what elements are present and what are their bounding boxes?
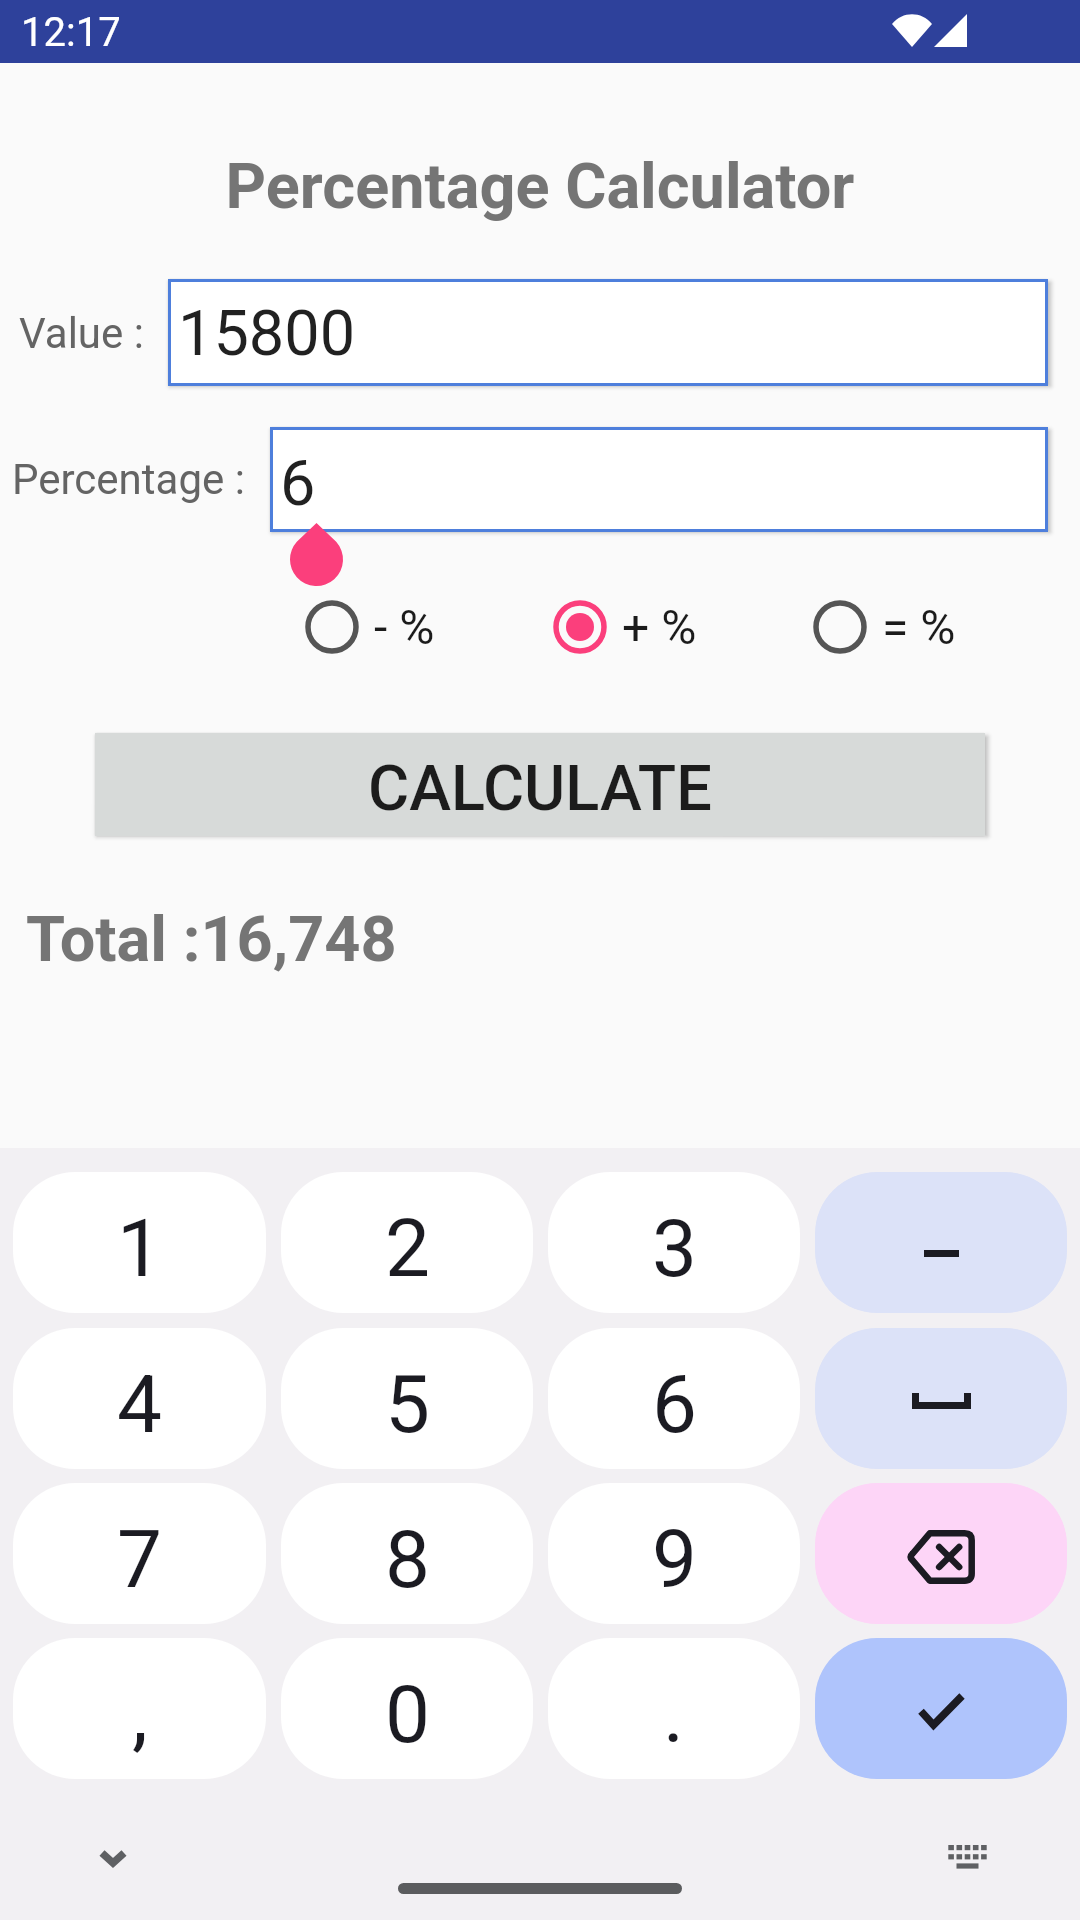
button[interactable]: 3 — [548, 1172, 800, 1313]
staticText: 4 — [117, 1358, 162, 1452]
staticText: 3 — [652, 1202, 697, 1296]
button[interactable]: 0 — [281, 1638, 533, 1779]
button[interactable]: Space — [815, 1328, 1067, 1469]
staticText: . — [663, 1668, 685, 1762]
staticText: 7 — [117, 1513, 162, 1607]
staticText: Percentage : — [12, 455, 245, 504]
button[interactable]: 5 — [281, 1328, 533, 1469]
staticText: Percentage Calculator — [0, 150, 1080, 224]
staticText: = % — [882, 599, 956, 655]
button[interactable]: Backspace — [815, 1483, 1067, 1624]
staticText: 1 — [117, 1202, 162, 1296]
staticText: + % — [622, 599, 697, 655]
button[interactable]: 9 — [548, 1483, 800, 1624]
staticText: Value : — [19, 309, 144, 358]
button[interactable]: Hide keyboard — [77, 1822, 149, 1894]
button[interactable]: , — [13, 1638, 266, 1779]
button[interactable]: 15800 — [168, 279, 1048, 386]
staticText: 5 — [385, 1358, 430, 1452]
staticText: - % — [374, 599, 435, 655]
staticText: , — [132, 1668, 148, 1762]
button[interactable]: . — [548, 1638, 800, 1779]
button[interactable]: 2 — [281, 1172, 533, 1313]
staticText: 12:17 — [21, 9, 121, 56]
button[interactable]: CALCULATE — [95, 733, 985, 836]
button[interactable]: Change keyboard — [931, 1820, 1003, 1892]
button[interactable]: 8 — [281, 1483, 533, 1624]
button[interactable]: Done — [815, 1638, 1067, 1779]
button[interactable]: Minus — [815, 1172, 1067, 1313]
button[interactable]: 4 — [13, 1328, 266, 1469]
button[interactable]: + % — [550, 593, 697, 661]
staticText: 2 — [385, 1202, 430, 1296]
staticText: 9 — [652, 1513, 697, 1607]
button[interactable]: 6 — [548, 1328, 800, 1469]
staticText: CALCULATE — [368, 752, 712, 826]
staticText: 8 — [385, 1513, 430, 1607]
button[interactable]: 7 — [13, 1483, 266, 1624]
button[interactable]: - % — [302, 593, 435, 661]
staticText: Total :16,748 — [26, 903, 397, 977]
staticText: 6 — [652, 1358, 697, 1452]
staticText: 6 — [280, 447, 316, 521]
staticText: 0 — [385, 1668, 430, 1762]
staticText: 15800 — [178, 297, 356, 371]
button[interactable]: 6 — [270, 427, 1048, 532]
button[interactable]: = % — [810, 593, 956, 661]
button[interactable]: 1 — [13, 1172, 266, 1313]
